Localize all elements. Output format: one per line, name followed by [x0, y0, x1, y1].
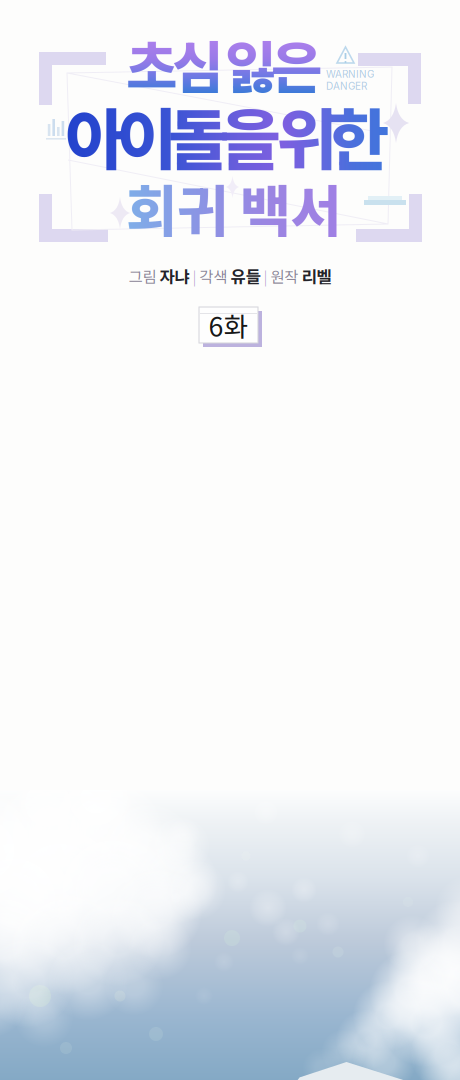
staticText: | — [189, 265, 199, 287]
staticText: 리벨 — [301, 264, 331, 288]
button[interactable]: 6화 — [199, 307, 262, 347]
staticText: 각색 — [199, 265, 230, 287]
staticText: 자냐 — [159, 264, 189, 288]
staticText: WARNING — [326, 68, 374, 80]
staticText: | — [260, 265, 270, 287]
staticText: 그림 — [128, 265, 159, 287]
staticText: 원작 — [270, 265, 301, 287]
staticText: 유들 — [230, 264, 260, 288]
staticText: 6화 — [208, 306, 248, 344]
staticText: DANGER — [326, 80, 367, 92]
